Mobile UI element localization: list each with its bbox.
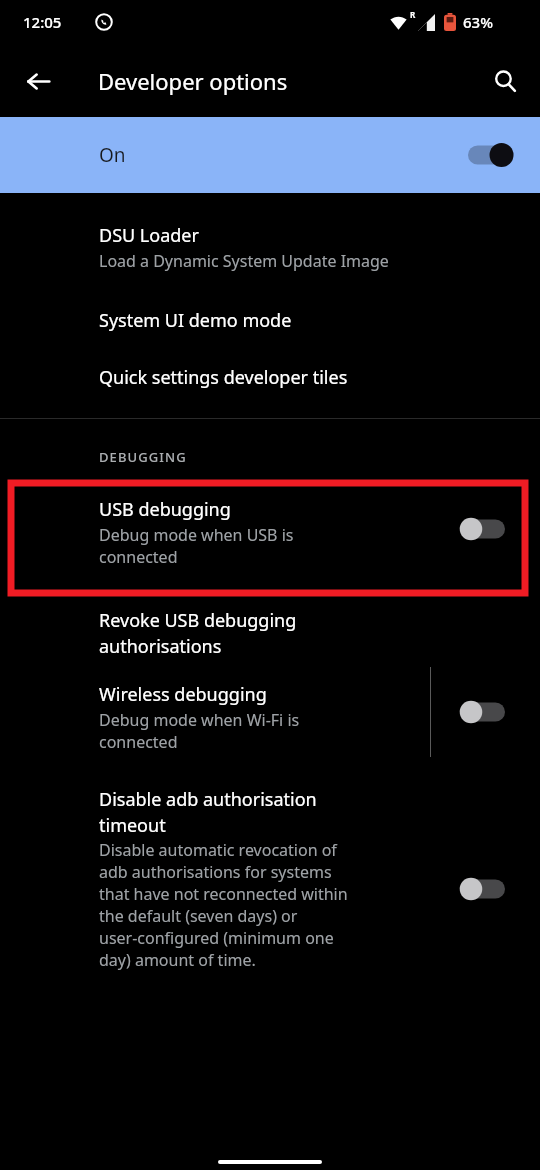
staticText: Quick settings developer tiles: [99, 365, 348, 390]
button[interactable]: System UI demo mode: [0, 278, 540, 339]
button[interactable]: Quick settings developer tiles: [0, 339, 540, 396]
staticText: R: [410, 9, 416, 20]
staticText: Debug mode when USB is connected: [99, 524, 294, 568]
button[interactable]: Search: [482, 58, 528, 104]
staticText: Debug mode when Wi-Fi is connected: [99, 709, 300, 753]
staticText: Developer options: [98, 66, 288, 96]
staticText: Android System WebView: [99, 155, 291, 177]
staticText: 12:05: [23, 12, 62, 32]
staticText: System UI demo mode: [99, 308, 292, 333]
button[interactable]: Back: [15, 58, 61, 104]
button[interactable]: Wireless debugging: [0, 664, 540, 767]
staticText: Disable adb authorisation timeout: [99, 787, 317, 837]
staticText: Load a Dynamic System Update Image: [99, 250, 389, 272]
button[interactable]: On: [0, 117, 540, 193]
button[interactable]: Disable adb authorisation timeout: [0, 767, 540, 981]
staticText: Disable automatic revocation of adb auth…: [99, 839, 348, 971]
staticText: DSU Loader: [99, 223, 199, 248]
staticText: Revoke USB debugging authorisations: [99, 608, 297, 658]
button[interactable]: USB debugging: [0, 481, 540, 584]
staticText: Wireless debugging: [99, 682, 267, 707]
staticText: On: [99, 142, 126, 168]
staticText: DEBUGGING: [99, 448, 187, 466]
button[interactable]: Revoke USB debugging authorisations: [0, 584, 540, 664]
button[interactable]: DSU Loader: [0, 191, 540, 278]
staticText: 63%: [463, 12, 493, 32]
staticText: USB debugging: [99, 497, 231, 522]
